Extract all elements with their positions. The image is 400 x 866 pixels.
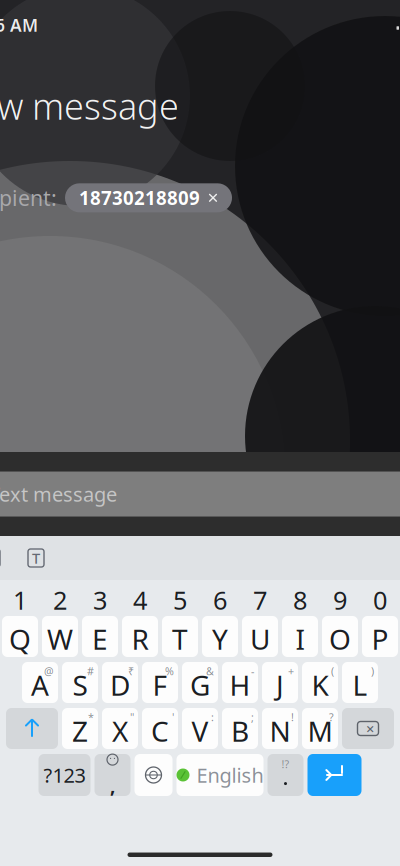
staticText: Q: [9, 620, 31, 658]
staticText: %: [165, 664, 174, 678]
button[interactable]: U: [242, 616, 278, 657]
button[interactable]: Text message: [0, 471, 400, 516]
staticText: ?123: [43, 762, 85, 788]
staticText: 5: [173, 583, 187, 617]
button[interactable]: K: [302, 662, 338, 703]
staticText: ;: [251, 710, 254, 724]
button[interactable]: O: [322, 616, 358, 657]
button[interactable]: Period: [267, 754, 303, 796]
staticText: +: [288, 664, 294, 678]
staticText: G: [190, 666, 210, 704]
staticText: Recipient:: [0, 184, 57, 212]
staticText: 0: [373, 583, 387, 617]
button[interactable]: English: [176, 754, 263, 796]
button[interactable]: 1: [2, 587, 38, 613]
button[interactable]: N: [262, 708, 298, 749]
button[interactable]: X: [102, 708, 138, 749]
button[interactable]: Q: [2, 616, 38, 657]
button[interactable]: 3: [82, 587, 118, 613]
staticText: T: [172, 620, 188, 658]
staticText: W: [47, 620, 73, 658]
button[interactable]: 7: [242, 587, 278, 613]
button[interactable]: R: [122, 616, 158, 657]
staticText: P: [371, 620, 388, 658]
button[interactable]: Y: [202, 616, 238, 657]
staticText: U: [250, 620, 270, 658]
staticText: R: [131, 620, 148, 658]
staticText: New message: [0, 82, 179, 130]
staticText: 9: [333, 583, 347, 617]
staticText: H: [229, 666, 250, 704]
button[interactable]: B: [222, 708, 258, 749]
button[interactable]: Text style: [14, 537, 58, 579]
button[interactable]: 0: [362, 587, 398, 613]
staticText: S: [72, 666, 87, 704]
staticText: #: [87, 664, 94, 678]
staticText: 8: [293, 583, 307, 617]
button[interactable]: 8: [282, 587, 318, 613]
button[interactable]: 5: [162, 587, 198, 613]
staticText: Text message: [0, 481, 117, 507]
button[interactable]: T: [162, 616, 198, 657]
staticText: (: [331, 664, 334, 678]
button[interactable]: C: [142, 708, 178, 749]
staticText: !?: [281, 757, 289, 771]
button[interactable]: Z: [62, 708, 98, 749]
staticText: O: [329, 620, 351, 658]
staticText: N: [269, 712, 290, 750]
staticText: A: [31, 666, 49, 704]
button[interactable]: ?123: [38, 754, 90, 796]
button[interactable]: Shift: [6, 708, 58, 749]
button[interactable]: L: [342, 662, 378, 703]
button[interactable]: S: [62, 662, 98, 703]
button[interactable]: Switch keyboard: [134, 754, 172, 796]
button[interactable]: H: [222, 662, 258, 703]
button[interactable]: J: [262, 662, 298, 703]
button[interactable]: F: [142, 662, 178, 703]
staticText: V: [191, 712, 208, 750]
staticText: 1: [13, 583, 27, 617]
button[interactable]: 2: [42, 587, 78, 613]
button[interactable]: 9: [322, 587, 358, 613]
staticText: Y: [212, 620, 228, 658]
button[interactable]: Return: [307, 754, 361, 796]
staticText: M: [307, 712, 332, 750]
button[interactable]: V: [182, 708, 218, 749]
staticText: 2:36 AM: [0, 13, 38, 36]
staticText: ?: [329, 710, 334, 724]
button[interactable]: 6: [202, 587, 238, 613]
staticText: -: [251, 664, 254, 678]
button[interactable]: 4: [122, 587, 158, 613]
staticText: 4: [133, 583, 147, 617]
staticText: C: [151, 712, 169, 750]
staticText: ×: [366, 719, 374, 738]
staticText: X: [112, 712, 128, 750]
staticText: 7: [253, 583, 267, 617]
button[interactable]: A: [22, 662, 58, 703]
staticText: 6: [213, 583, 227, 617]
button[interactable]: G: [182, 662, 218, 703]
button[interactable]: Delete: [342, 708, 394, 749]
staticText: ₹: [128, 664, 134, 678]
staticText: F: [152, 666, 167, 704]
staticText: ,: [110, 773, 115, 798]
button[interactable]: Paragraph format: [0, 537, 14, 579]
staticText: 18730218809: [79, 185, 200, 210]
staticText: J: [276, 666, 284, 704]
button[interactable]: M: [302, 708, 338, 749]
staticText: 2: [53, 583, 67, 617]
staticText: ): [371, 664, 374, 678]
button[interactable]: Emoji and comma: [94, 754, 130, 796]
button[interactable]: E: [82, 616, 118, 657]
staticText: E: [92, 620, 108, 658]
button[interactable]: Remove recipient: [200, 185, 226, 211]
staticText: B: [231, 712, 249, 750]
staticText: English: [196, 762, 263, 788]
button[interactable]: P: [362, 616, 398, 657]
button[interactable]: I: [282, 616, 318, 657]
staticText: I: [295, 620, 304, 658]
button[interactable]: W: [42, 616, 78, 657]
staticText: @: [44, 664, 54, 678]
button[interactable]: D: [102, 662, 138, 703]
staticText: !: [291, 710, 294, 724]
